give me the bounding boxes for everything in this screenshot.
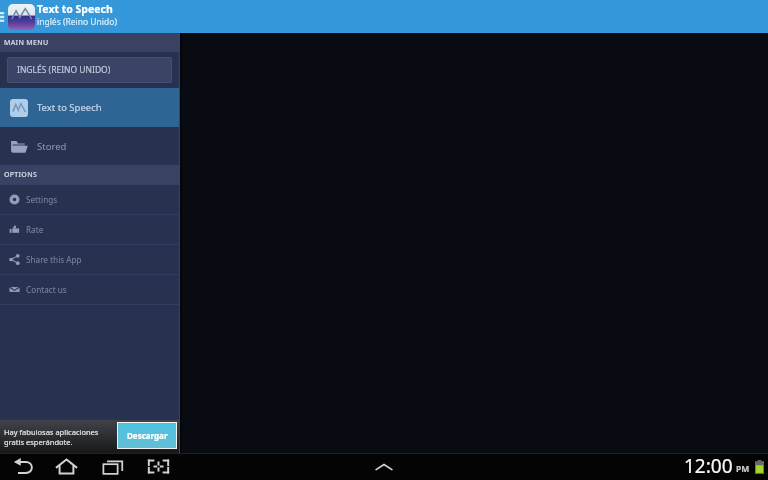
staticText: Share this App xyxy=(26,254,82,265)
button[interactable]: Open navigation drawer xyxy=(0,0,125,33)
button[interactable]: Descargar xyxy=(118,423,176,448)
staticText: Contact us xyxy=(26,284,67,295)
staticText: Hay fabulosas aplicaciones xyxy=(4,427,99,437)
button[interactable]: INGLÉS (REINO UNIDO) xyxy=(7,57,172,83)
button[interactable]: Back xyxy=(1,453,45,480)
staticText: Rate xyxy=(26,224,44,235)
staticText: 12:00 xyxy=(684,453,733,479)
button[interactable]: Screenshot xyxy=(136,453,180,480)
button[interactable]: Contact us xyxy=(0,275,179,304)
staticText: Settings xyxy=(26,194,58,205)
staticText: MAIN MENU xyxy=(4,38,49,48)
staticText: inglés (Reino Unido) xyxy=(37,16,117,28)
button[interactable]: Recent apps xyxy=(91,453,135,480)
staticText: OPTIONS xyxy=(4,170,38,180)
staticText: Text to Speech xyxy=(37,101,102,114)
button[interactable]: Rate xyxy=(0,215,179,244)
button[interactable]: Show system bar xyxy=(367,453,401,480)
staticText: Descargar xyxy=(127,430,168,441)
staticText: gratis esperándote. xyxy=(4,437,73,447)
staticText: PM xyxy=(736,463,750,475)
staticText: INGLÉS (REINO UNIDO) xyxy=(17,64,111,76)
staticText: Text to Speech xyxy=(37,2,113,16)
staticText: Stored xyxy=(37,140,67,153)
button[interactable]: Share this App xyxy=(0,245,179,274)
button[interactable]: Settings xyxy=(0,185,179,214)
button[interactable]: Text to Speech xyxy=(0,88,179,127)
button[interactable]: Home xyxy=(44,453,88,480)
button[interactable]: Stored xyxy=(0,127,179,165)
